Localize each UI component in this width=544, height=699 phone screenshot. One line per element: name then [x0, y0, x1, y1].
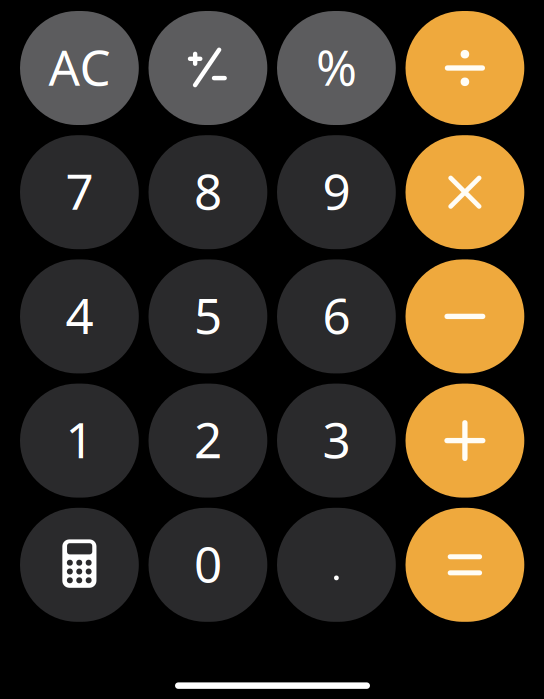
button[interactable]: 1	[20, 384, 139, 498]
button[interactable]: 7	[20, 135, 139, 249]
staticText: 3	[322, 406, 350, 472]
staticText: 6	[322, 282, 350, 348]
staticText: %	[316, 34, 357, 99]
staticText: 2	[194, 406, 222, 472]
button[interactable]: Minus	[405, 259, 524, 373]
staticText: 9	[322, 158, 350, 223]
button[interactable]: 0	[148, 508, 267, 622]
staticText: 8	[194, 158, 222, 223]
button[interactable]: Equals	[405, 508, 524, 622]
button[interactable]: Calculator keypad	[20, 508, 139, 622]
button[interactable]: 9	[277, 135, 396, 249]
button[interactable]: 4	[20, 259, 139, 373]
button[interactable]: Divide	[405, 11, 524, 125]
button[interactable]: Decimal point	[277, 508, 396, 622]
staticText: 5	[194, 282, 222, 348]
staticText: AC	[48, 34, 110, 99]
button[interactable]: 5	[148, 259, 267, 373]
button[interactable]: AC	[20, 11, 139, 125]
button[interactable]: 8	[148, 135, 267, 249]
button[interactable]: 6	[277, 259, 396, 373]
staticText: 4	[65, 282, 93, 348]
button[interactable]: Plus minus	[148, 11, 267, 125]
staticText: 1	[65, 406, 93, 472]
staticText: 7	[65, 158, 93, 223]
button[interactable]: Plus	[405, 384, 524, 498]
button[interactable]: 2	[148, 384, 267, 498]
staticText: 0	[194, 530, 222, 596]
button[interactable]: 3	[277, 384, 396, 498]
button[interactable]: %	[277, 11, 396, 125]
button[interactable]: Multiply	[405, 135, 524, 249]
